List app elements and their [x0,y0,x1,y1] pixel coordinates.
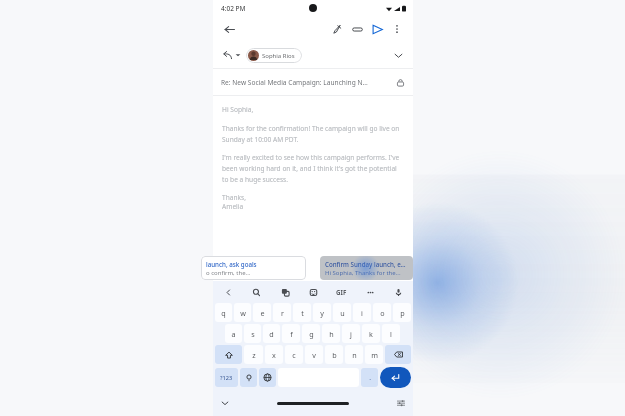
staticText: x [272,350,276,360]
staticText: m [371,350,378,360]
button[interactable]: Keyboard settings [394,396,408,410]
button[interactable]: Expand [390,47,406,63]
staticText: f [290,329,293,339]
button[interactable]: Back [219,19,239,39]
button[interactable]: Enter [380,367,411,388]
button[interactable]: Change language [259,368,276,387]
staticText: launch, ask goals [206,260,257,268]
button[interactable]: k [362,324,380,343]
staticText: Thanks, [222,193,246,202]
staticText: r [281,308,284,318]
button[interactable]: ?123 [215,368,238,387]
button[interactable]: c [285,345,303,364]
button[interactable]: More [360,283,380,301]
staticText: t [301,308,304,318]
button[interactable]: More options [387,19,407,39]
staticText: w [240,308,246,318]
button[interactable]: y [313,303,331,322]
button[interactable]: z [244,345,263,364]
button[interactable]: t [293,303,311,322]
staticText: . [369,373,371,382]
button[interactable]: w [234,303,251,322]
staticText: y [320,308,324,318]
staticText: i [361,308,363,318]
button[interactable]: g [302,324,320,343]
staticText: q [221,308,226,318]
button[interactable]: Shift [215,345,242,364]
button[interactable]: Backspace [385,345,411,364]
staticText: g [309,329,314,339]
staticText: c [292,350,296,360]
button[interactable]: Search [246,283,266,301]
button[interactable]: . [361,368,378,387]
button[interactable]: i [353,303,371,322]
button[interactable]: v [305,345,323,364]
staticText: n [352,350,357,360]
staticText: Hi Sophia, [222,105,254,114]
staticText: Sophia Rios [262,52,295,60]
staticText: a [231,329,236,339]
button[interactable]: Emoji [240,368,257,387]
button[interactable]: launch, ask goals [201,256,306,280]
button[interactable]: u [333,303,351,322]
staticText: z [252,350,256,360]
button[interactable]: o [373,303,391,322]
button[interactable]: l [382,324,400,343]
button[interactable]: n [345,345,363,364]
button[interactable]: f [282,324,300,343]
staticText: k [369,329,373,339]
button[interactable]: b [325,345,343,364]
staticText: Re: New Social Media Campaign: Launching… [221,78,392,87]
button[interactable]: j [342,324,360,343]
staticText: d [269,329,274,339]
staticText: ?123 [220,374,233,382]
button[interactable]: Stickers [303,283,323,301]
staticText: j [350,329,352,339]
button[interactable]: e [253,303,271,322]
staticText: I'm really excited to see how this campa… [222,153,404,184]
staticText: u [340,308,345,318]
button[interactable]: d [263,324,280,343]
button[interactable]: Hide keyboard [218,396,232,410]
staticText: l [390,329,392,339]
staticText: h [329,329,334,339]
button[interactable]: s [244,324,261,343]
staticText: o confirm, the... [206,269,251,277]
button[interactable]: p [393,303,411,322]
button[interactable]: h [322,324,340,343]
staticText: 4:02 PM [221,4,246,13]
staticText: Confirm Sunday launch, excited. [325,260,408,268]
staticText: Thanks for the confirmation! The campaig… [222,124,404,144]
staticText: b [332,350,337,360]
button[interactable]: a [225,324,242,343]
staticText: o [380,308,385,318]
button[interactable]: Translate [275,283,295,301]
button[interactable]: r [273,303,291,322]
button[interactable]: Voice input [388,283,408,301]
button[interactable]: Re: New Social Media Campaign: Launching… [221,69,405,95]
staticText: s [251,329,255,339]
staticText: e [260,308,265,318]
staticText: Hi Sophia, Thanks for the... [325,269,401,277]
button[interactable]: x [265,345,283,364]
button[interactable]: Send [367,19,387,39]
button[interactable]: GIF [331,283,351,301]
staticText: GIF [336,288,347,296]
button[interactable]: Reply [220,48,234,62]
button[interactable]: Formatting [327,19,347,39]
button[interactable]: Previous [218,283,238,301]
button[interactable]: Confirm Sunday launch, excited. [320,256,413,280]
button[interactable]: Sophia Rios [246,48,302,63]
staticText: v [312,350,316,360]
button[interactable]: q [215,303,232,322]
staticText: Amelia [222,202,244,211]
button[interactable]: m [365,345,383,364]
staticText: p [400,308,405,318]
button[interactable]: Attach file [347,19,367,39]
